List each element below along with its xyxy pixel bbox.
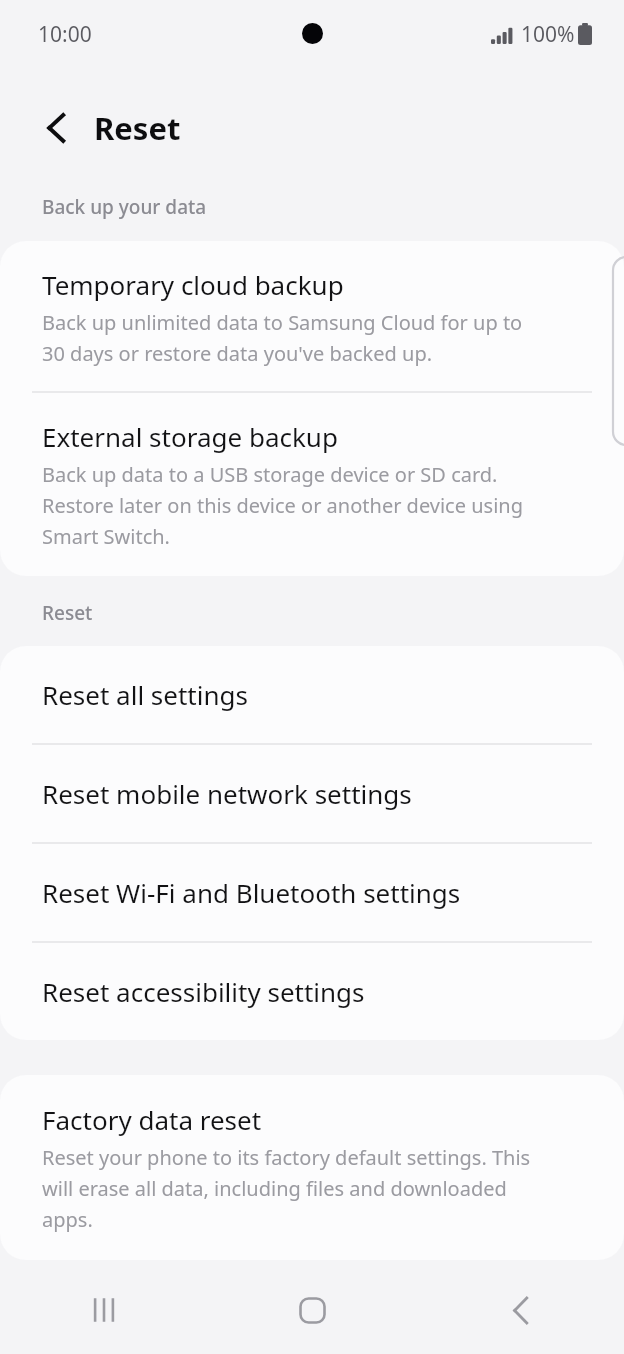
- staticText: 100%: [521, 20, 575, 49]
- staticText: Reset all settings: [42, 677, 248, 712]
- staticText: External storage backup: [42, 419, 338, 454]
- staticText: Reset Wi-Fi and Bluetooth settings: [42, 875, 461, 910]
- button[interactable]: Temporary cloud backup: [0, 241, 624, 391]
- staticText: 10:00: [38, 20, 92, 49]
- staticText: Temporary cloud backup: [42, 267, 344, 302]
- button[interactable]: Reset accessibility settings: [0, 943, 624, 1040]
- staticText: Reset mobile network settings: [42, 776, 412, 811]
- button[interactable]: Back: [416, 1266, 624, 1354]
- staticText: Back up data to a USB storage device or …: [42, 461, 523, 550]
- button[interactable]: Home: [208, 1266, 416, 1354]
- button[interactable]: Factory data reset: [0, 1075, 624, 1260]
- button[interactable]: Back: [36, 108, 76, 148]
- staticText: Back up your data: [42, 194, 207, 220]
- button[interactable]: Reset all settings: [0, 646, 624, 743]
- button[interactable]: External storage backup: [0, 393, 624, 576]
- button[interactable]: Recent apps: [0, 1266, 208, 1354]
- button[interactable]: Reset Wi-Fi and Bluetooth settings: [0, 844, 624, 941]
- staticText: Reset your phone to its factory default …: [42, 1144, 531, 1233]
- button[interactable]: Reset mobile network settings: [0, 745, 624, 842]
- staticText: Reset: [42, 600, 93, 626]
- staticText: Factory data reset: [42, 1102, 262, 1137]
- staticText: Back up unlimited data to Samsung Cloud …: [42, 309, 523, 367]
- staticText: Reset accessibility settings: [42, 974, 365, 1009]
- staticText: Reset: [94, 107, 181, 149]
